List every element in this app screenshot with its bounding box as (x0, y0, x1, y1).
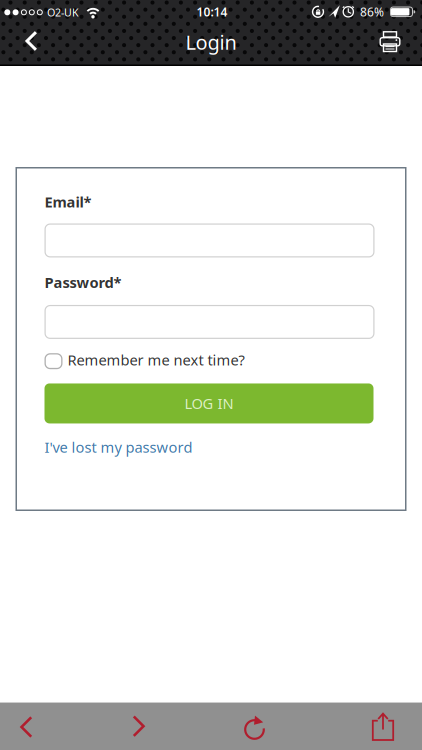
staticText: I've lost my password (44, 437, 192, 457)
button[interactable]: LOG IN (44, 383, 373, 423)
button[interactable]: Back (4, 704, 48, 748)
button[interactable]: Remember me next time? (44, 350, 244, 369)
staticText: O2-UK (47, 5, 79, 19)
staticText: 86% (360, 4, 384, 20)
staticText: Password* (44, 272, 121, 292)
staticText: LOG IN (184, 394, 233, 413)
button[interactable]: I've lost my password (44, 437, 192, 457)
button[interactable]: Back (4, 19, 48, 63)
button[interactable]: Forward (117, 704, 161, 748)
staticText: Login (185, 29, 236, 55)
button[interactable]: Share (361, 704, 405, 748)
staticText: Remember me next time? (67, 350, 244, 369)
button[interactable]: Print (368, 20, 412, 64)
staticText: 10:14 (196, 4, 227, 20)
staticText: Email* (44, 192, 91, 211)
button[interactable]: Reload (232, 704, 276, 748)
